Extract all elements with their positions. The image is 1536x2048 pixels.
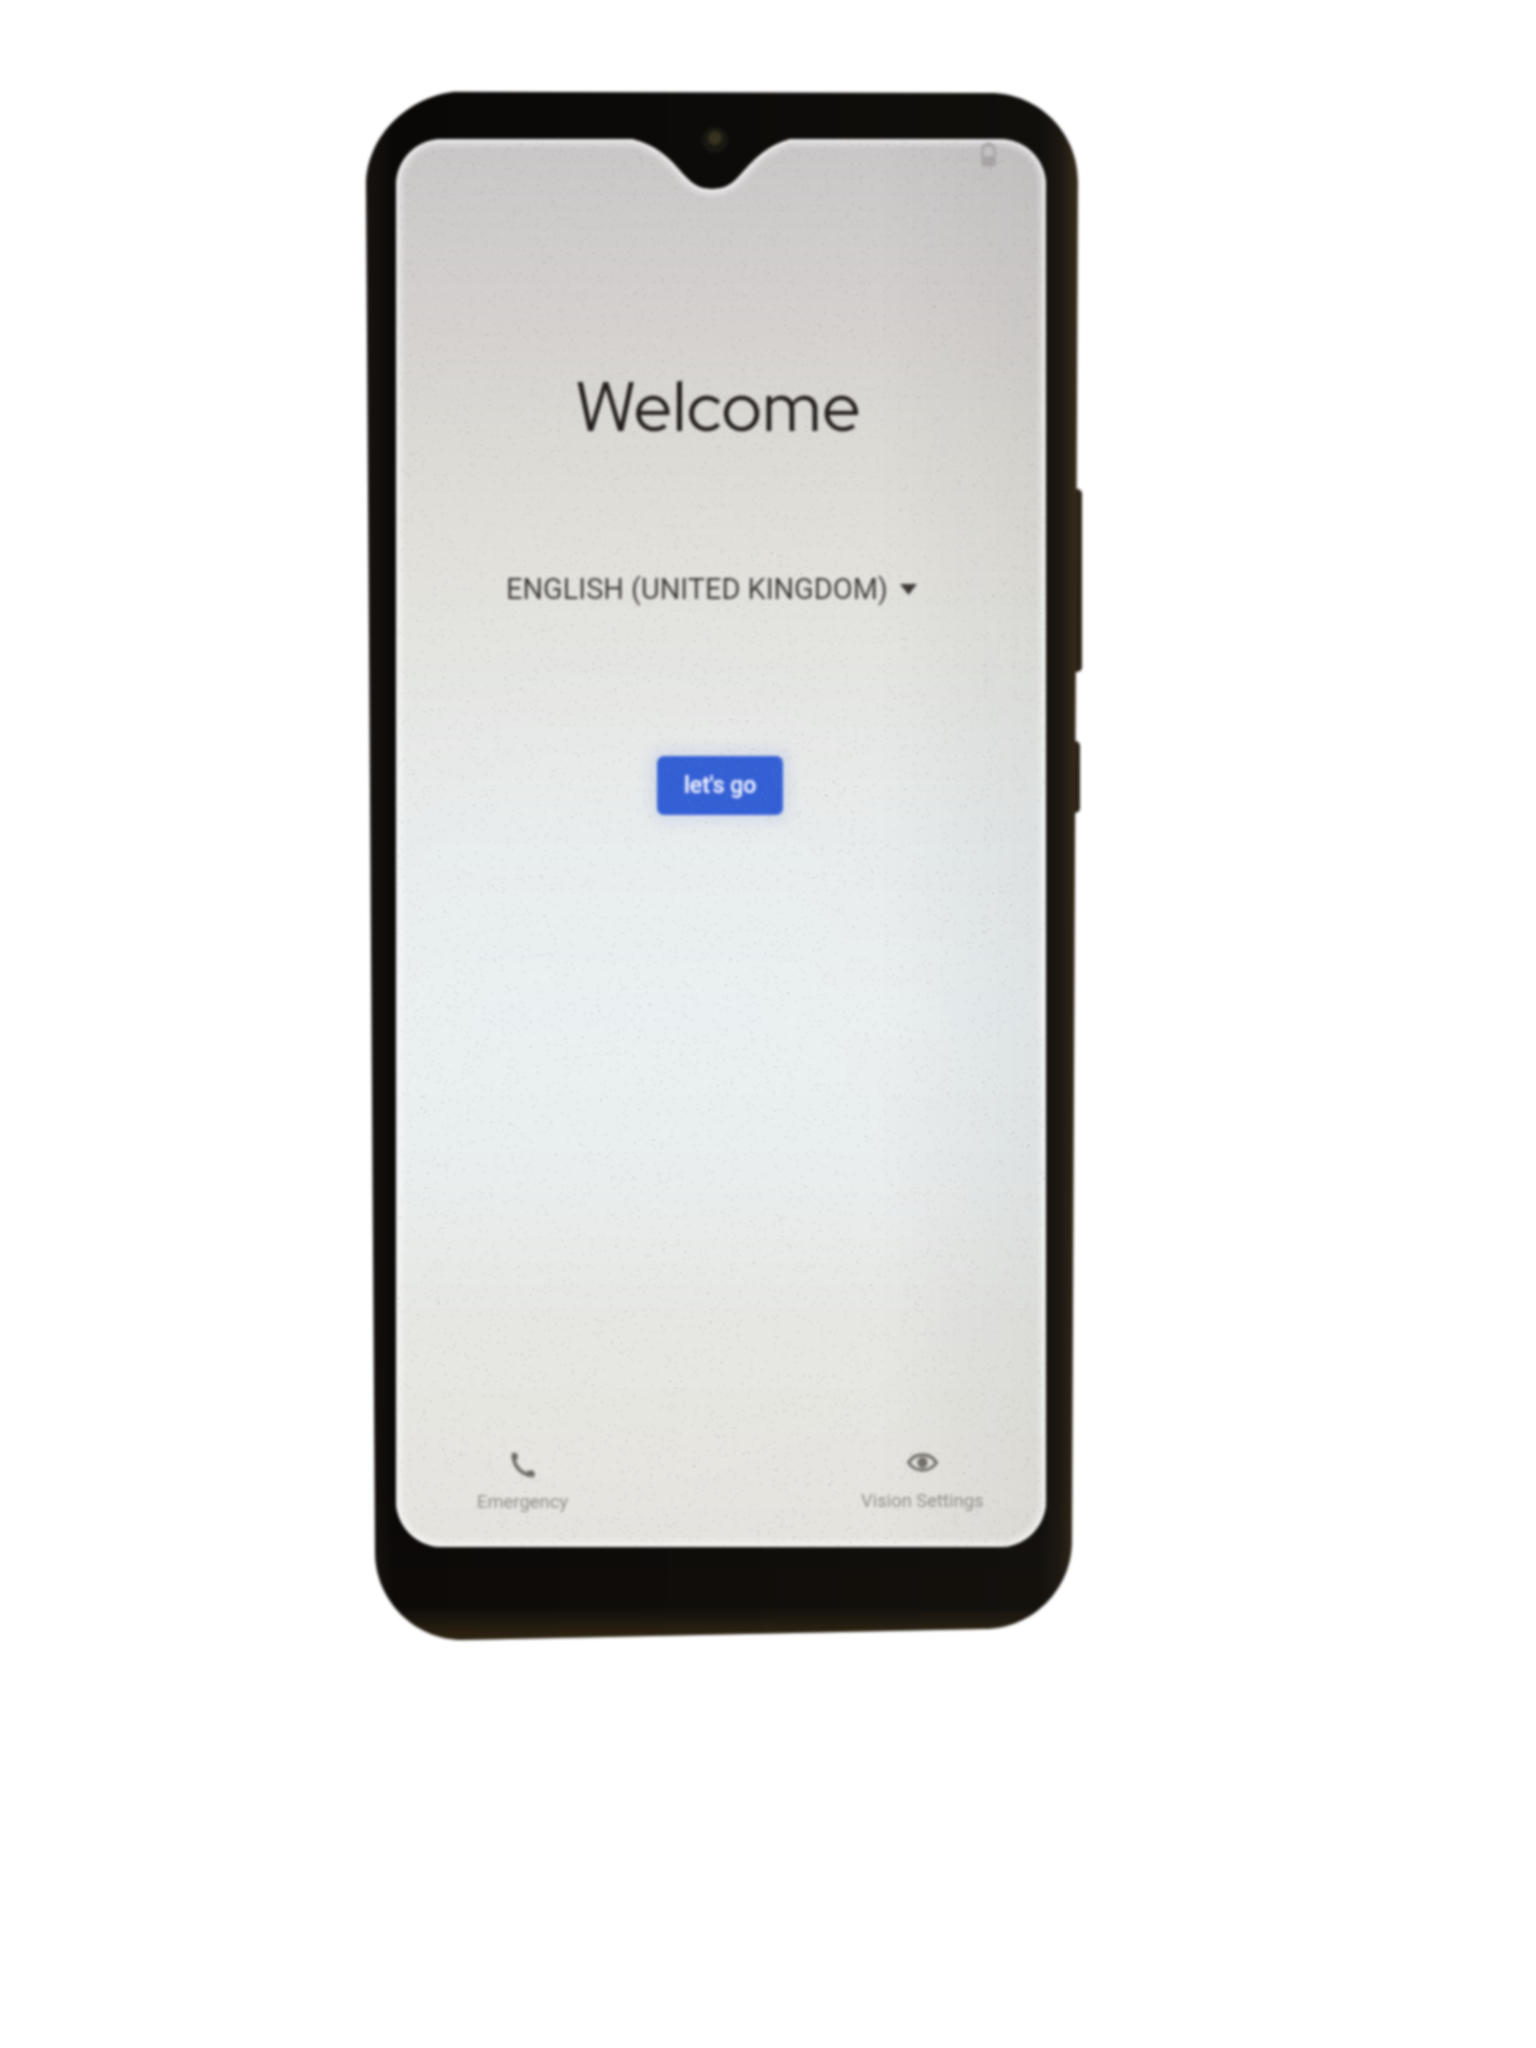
- staticText: let's go: [684, 772, 757, 799]
- other: Vision settings: [908, 1452, 937, 1473]
- button[interactable]: Vision settings: [816, 1452, 1028, 1512]
- staticText: Vision Settings: [861, 1490, 984, 1512]
- other: Emergency call: [510, 1453, 535, 1478]
- button[interactable]: let's go: [657, 756, 783, 815]
- button[interactable]: Emergency call: [437, 1453, 607, 1513]
- staticText: Emergency: [477, 1491, 568, 1513]
- staticText: Welcome: [393, 360, 1043, 452]
- staticText: ENGLISH (UNITED KINGDOM): [506, 572, 888, 606]
- button[interactable]: ENGLISH (UNITED KINGDOM): [386, 572, 1036, 606]
